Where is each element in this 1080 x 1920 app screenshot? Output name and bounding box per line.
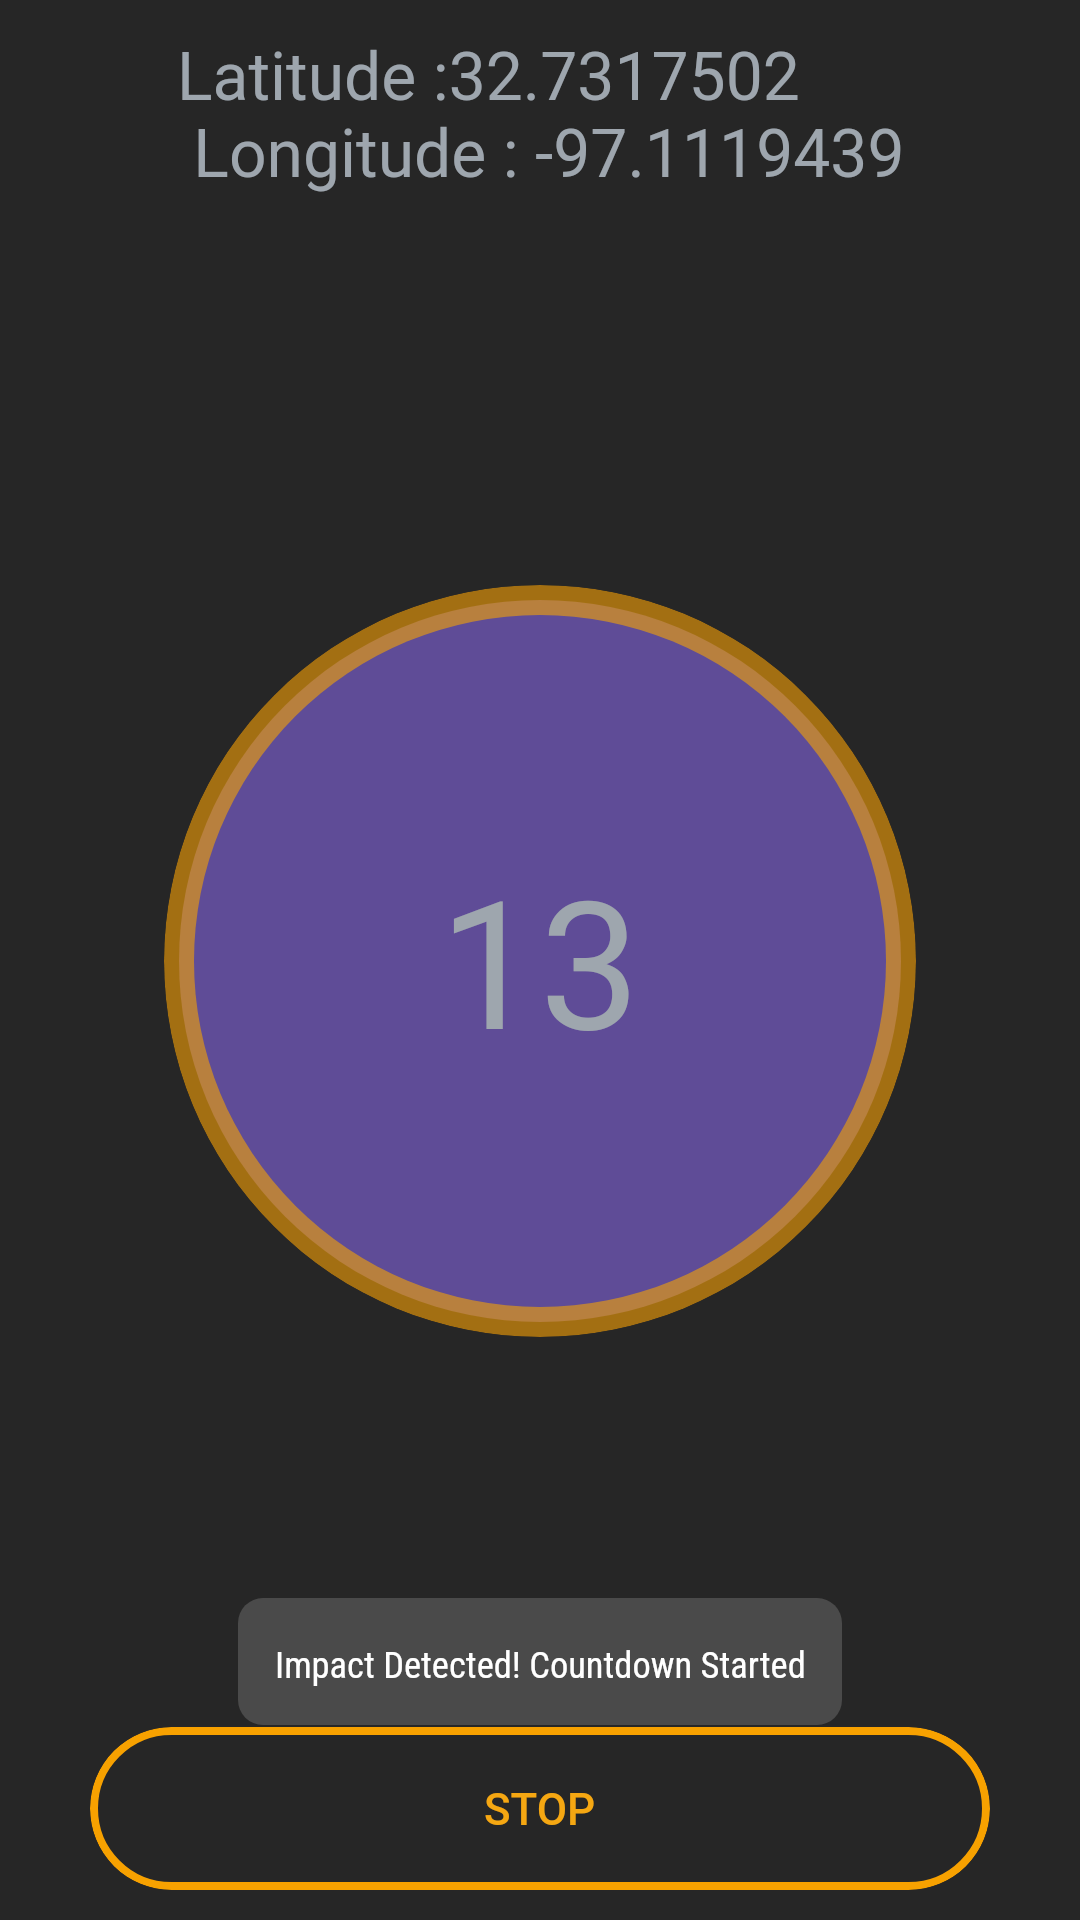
button[interactable]: STOP (90, 1727, 990, 1890)
staticText: 13 (439, 863, 641, 1073)
button[interactable]: Countdown, 13 seconds remaining (164, 585, 916, 1337)
staticText: Impact Detected! Countdown Started (275, 1644, 806, 1687)
staticText: Latitude :32.7317502 Longitude : -97.111… (177, 39, 905, 193)
staticText: STOP (484, 1784, 596, 1836)
